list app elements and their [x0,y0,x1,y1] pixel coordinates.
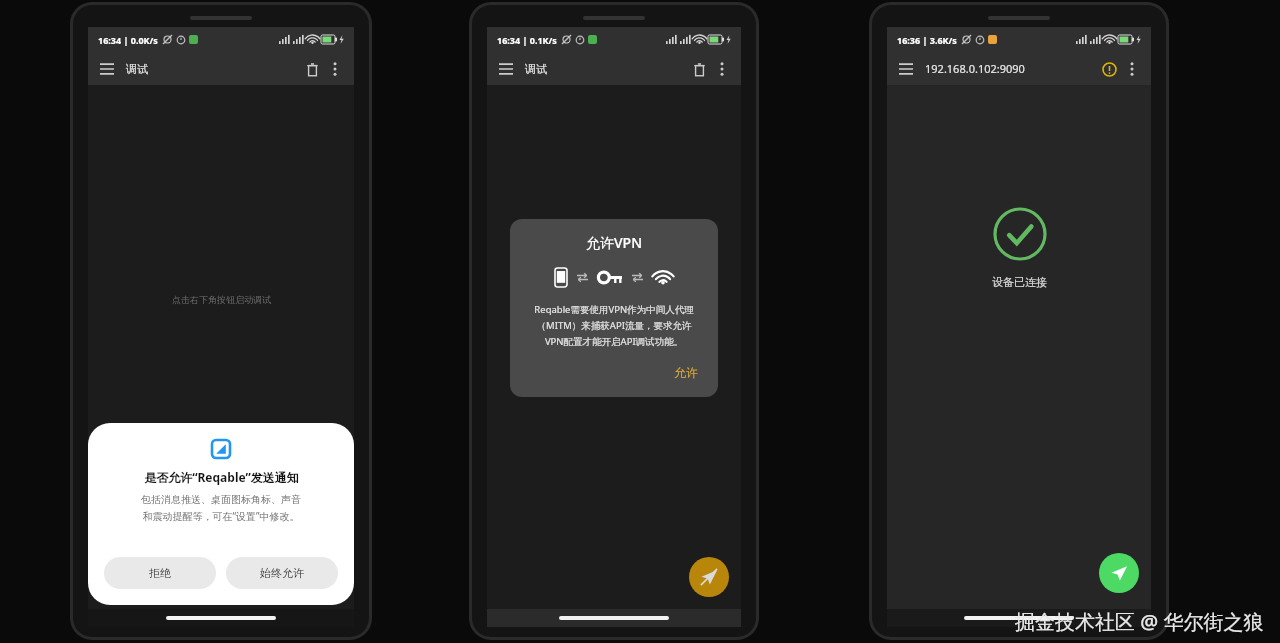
button[interactable]: More options [324,58,346,80]
button[interactable]: Stop capture [689,557,729,597]
staticText: 始终允许 [260,566,304,580]
staticText: Reqable需要使用VPN作为中间人代理 （MITM）来捕获API流量，要求允… [534,303,694,348]
staticText: 16:34 | 0.0K/s [98,34,158,46]
button[interactable]: More options [1121,58,1143,80]
button[interactable]: More options [711,58,733,80]
staticText: 允许 [674,365,698,380]
button[interactable]: 允许 [668,362,704,383]
button[interactable]: Delete [687,57,711,81]
staticText: 16:34 | 0.1K/s [497,34,557,46]
button[interactable]: 始终允许 [226,557,338,589]
staticText: 设备已连接 [992,275,1047,289]
button[interactable]: Start capture [1099,553,1139,593]
staticText: 包括消息推送、桌面图标角标、声音 和震动提醒等，可在“设置”中修改。 [141,493,301,523]
staticText: 调试 [525,62,547,76]
button[interactable]: Menu [96,58,118,80]
button[interactable]: Menu [495,58,517,80]
staticText: 允许VPN [586,233,643,252]
button[interactable]: Menu [895,58,917,80]
staticText: 掘金技术社区 @ 华尔街之狼 [1015,608,1264,635]
button[interactable]: Warning [1097,57,1121,81]
staticText: 16:36 | 3.6K/s [897,34,957,46]
staticText: 点击右下角按钮启动调试 [172,294,271,305]
staticText: 是否允许“Reqable”发送通知 [144,469,299,485]
staticText: 调试 [126,62,148,76]
staticText: 192.168.0.102:9090 [925,61,1025,76]
button[interactable]: Delete [300,57,324,81]
staticText: 拒绝 [149,566,171,580]
button[interactable]: 拒绝 [104,557,216,589]
